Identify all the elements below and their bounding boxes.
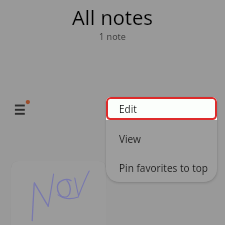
staticText: View [119,132,141,146]
staticText: Edit [119,102,137,116]
button[interactable]: Edit [106,97,217,120]
button[interactable]: Sort order [5,92,33,120]
button[interactable]: Note New [11,161,106,225]
staticText: All notes [72,4,153,31]
button[interactable]: Pin favorites to top [106,153,217,182]
button[interactable]: View [106,124,217,153]
staticText: Pin favorites to top [119,161,209,175]
staticText: 1 note [99,30,126,42]
